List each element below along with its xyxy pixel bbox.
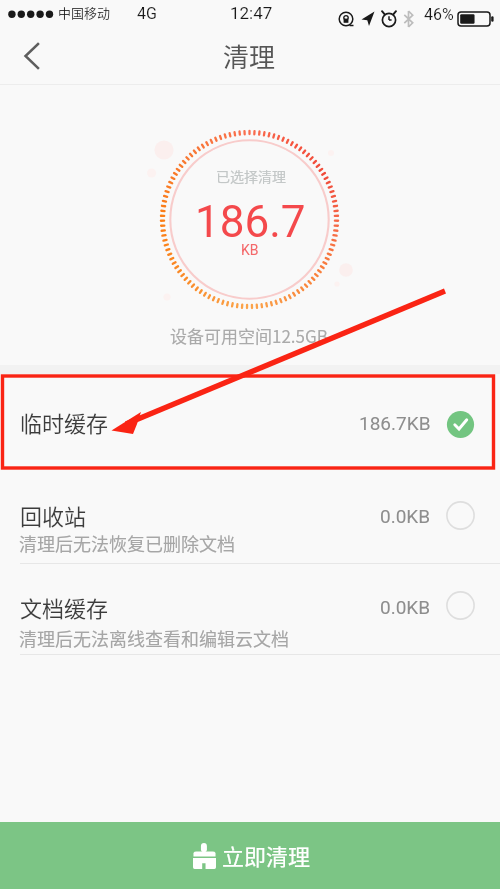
staticText: 立即清理: [222, 839, 311, 871]
staticText: 0.0KB: [380, 596, 431, 618]
staticText: 4G: [137, 4, 157, 23]
staticText: 文档缓存: [20, 591, 109, 623]
button[interactable]: 文档缓存: [0, 563, 500, 654]
staticText: 已选择清理: [216, 166, 286, 186]
staticText: 中国移动: [58, 3, 111, 22]
staticText: 清理: [223, 37, 276, 75]
staticText: 186.7KB: [359, 412, 431, 434]
button[interactable]: Clean now: [0, 822, 500, 889]
staticText: 12:47: [230, 3, 273, 23]
staticText: 回收站: [20, 499, 87, 531]
staticText: 设备可用空间12.5GB: [170, 323, 328, 348]
staticText: KB: [241, 242, 259, 258]
other: Clean now: [193, 843, 216, 869]
staticText: 0.0KB: [380, 505, 431, 527]
staticText: 清理后无法恢复已删除文档: [19, 530, 235, 556]
button[interactable]: Back: [0, 34, 60, 84]
button[interactable]: 回收站: [0, 472, 500, 563]
staticText: 临时缓存: [20, 406, 109, 438]
button[interactable]: 临时缓存: [0, 374, 500, 472]
staticText: 186.7: [195, 196, 306, 248]
staticText: 清理后无法离线查看和编辑云文档: [19, 625, 289, 651]
staticText: 46%: [424, 5, 454, 24]
